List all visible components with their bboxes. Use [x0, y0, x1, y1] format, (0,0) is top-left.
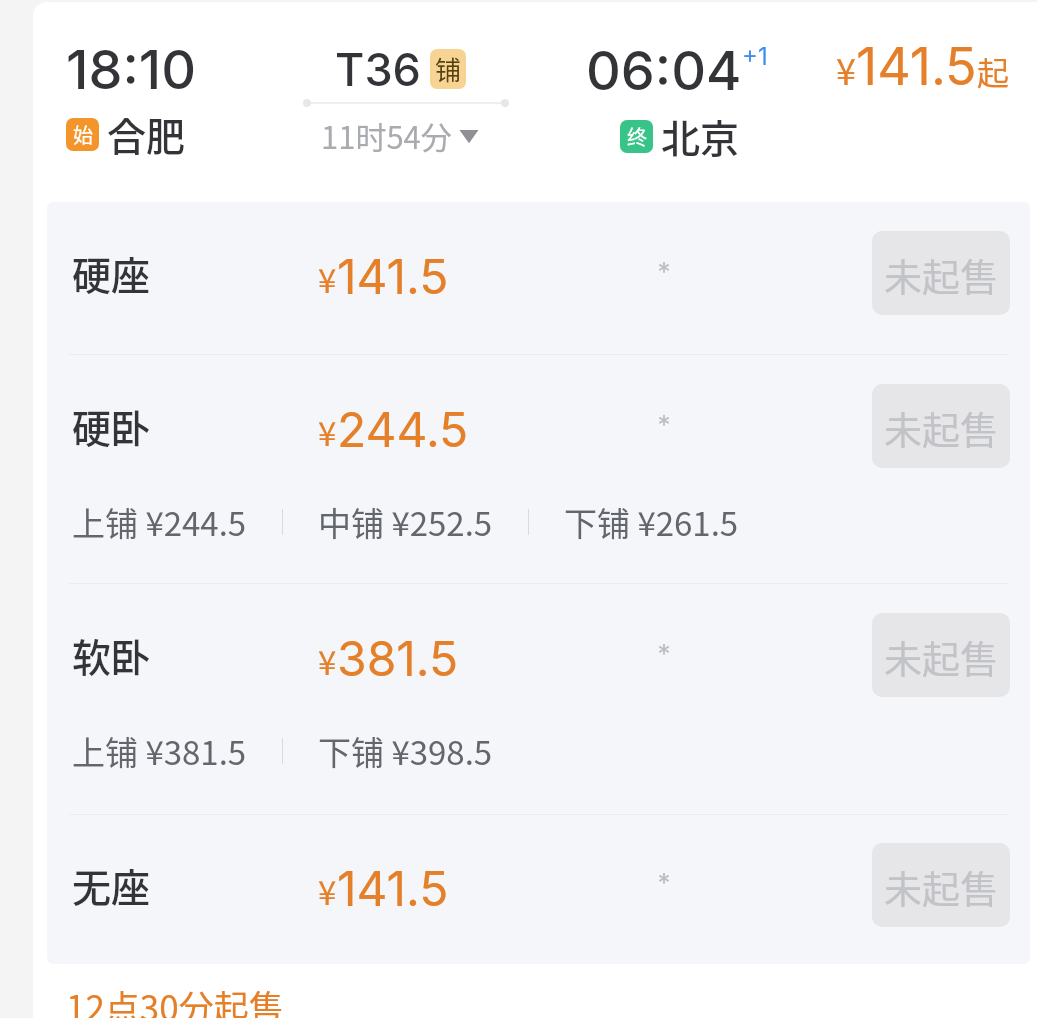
staticText: 硬卧 [72, 398, 318, 454]
button[interactable]: 中铺 ¥252.5 [318, 498, 493, 546]
staticText: +1 [742, 42, 768, 71]
button[interactable]: 未起售 [872, 384, 1010, 468]
button[interactable]: 软卧 [47, 584, 1030, 814]
button[interactable]: 上铺 ¥381.5 [72, 727, 247, 775]
staticText: 始 [73, 120, 93, 149]
staticText: 未起售 [884, 629, 999, 684]
staticText: * [564, 867, 764, 898]
staticText: 未起售 [884, 859, 999, 914]
staticText: 未起售 [884, 400, 999, 455]
staticText: 141.5 [337, 247, 449, 305]
staticText: 铺 [435, 50, 462, 88]
button[interactable]: 无座 [47, 815, 1030, 964]
staticText: 11时54分 [321, 113, 452, 158]
button[interactable]: T36 [335, 42, 466, 96]
staticText: T36 [335, 42, 421, 96]
staticText: ¥ [836, 43, 856, 95]
staticText: 软卧 [72, 627, 318, 683]
button[interactable]: 未起售 [872, 231, 1010, 315]
button[interactable]: 未起售 [872, 843, 1010, 927]
button[interactable]: 上铺 ¥244.5 [72, 498, 247, 546]
staticText: 244.5 [337, 400, 469, 458]
staticText: 未起售 [884, 247, 999, 302]
staticText: * [564, 638, 764, 669]
staticText: 合肥 [107, 106, 186, 162]
button[interactable]: 12点30分起售 [66, 980, 284, 1018]
staticText: 18:10 [66, 37, 197, 102]
staticText: ¥ [318, 637, 337, 685]
staticText: * [564, 409, 764, 440]
staticText: 141.5 [856, 35, 977, 98]
staticText: ¥ [318, 408, 337, 456]
button[interactable]: Show journey details [321, 113, 479, 158]
staticText: 无座 [72, 857, 318, 913]
button[interactable]: 始 [66, 106, 186, 162]
staticText: 北京 [661, 108, 740, 164]
button[interactable]: 硬座 [47, 202, 1030, 354]
staticText: 起 [977, 48, 1010, 94]
staticText: 硬座 [72, 245, 318, 301]
staticText: 141.5 [337, 859, 449, 917]
button[interactable]: 硬卧 [47, 355, 1030, 583]
staticText: ¥ [318, 867, 337, 915]
staticText: 终 [627, 122, 647, 151]
staticText: 381.5 [337, 629, 459, 687]
button[interactable]: 终 [620, 108, 740, 164]
staticText: ¥ [318, 255, 337, 303]
button[interactable]: 未起售 [872, 613, 1010, 697]
staticText: 06:04 [586, 38, 742, 103]
button[interactable]: 下铺 ¥398.5 [318, 727, 493, 775]
staticText: * [564, 256, 764, 287]
button[interactable]: 下铺 ¥261.5 [564, 498, 739, 546]
